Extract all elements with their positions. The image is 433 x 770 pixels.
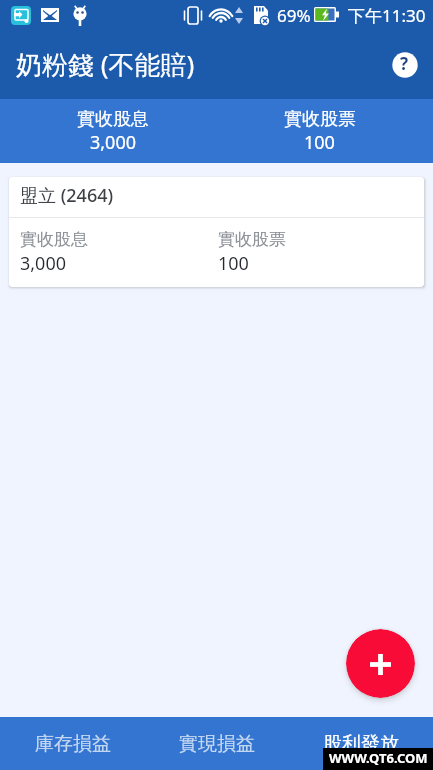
staticText: ? (400, 52, 409, 75)
staticText: 100 (304, 130, 335, 155)
button[interactable]: Help (382, 42, 427, 87)
staticText: 69% (277, 4, 311, 27)
button[interactable]: Add (346, 629, 415, 698)
staticText: 實現損益 (179, 732, 255, 756)
staticText: 實收股票 (284, 108, 356, 131)
staticText: 實收股息 (77, 108, 149, 131)
staticText: 3,000 (20, 251, 67, 276)
staticText: 下午11:30 (348, 4, 426, 27)
staticText: 實收股票 (218, 229, 286, 250)
button[interactable]: 實現損益 (145, 717, 289, 770)
staticText: 100 (218, 251, 249, 276)
staticText: 實收股息 (20, 229, 88, 250)
staticText: 奶粉錢 (不能賠) (16, 46, 195, 82)
staticText: 股利發放 (323, 732, 399, 756)
staticText: WWW.QT6.COM (329, 749, 428, 767)
staticText: 庫存損益 (35, 732, 111, 756)
staticText: 盟立 (2464) (20, 183, 114, 208)
staticText: 3,000 (90, 130, 137, 155)
button[interactable]: 庫存損益 (0, 717, 145, 770)
button[interactable]: 盟立 (2464) (9, 177, 424, 287)
button[interactable]: 股利發放 (289, 717, 433, 770)
